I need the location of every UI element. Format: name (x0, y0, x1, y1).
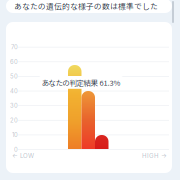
staticText: HIGH → (142, 152, 167, 159)
staticText: ← LOW (12, 152, 34, 159)
staticText: 0 (14, 146, 18, 153)
staticText: あなたの判定結果 61.3% (41, 77, 120, 88)
button[interactable]: HIGH → (142, 152, 167, 159)
staticText: 50 (10, 73, 18, 80)
staticText: 70 (11, 44, 18, 51)
staticText: 60 (10, 58, 18, 65)
staticText: 10 (12, 131, 18, 138)
staticText: 20 (10, 117, 18, 124)
staticText: 30 (10, 102, 18, 109)
button[interactable]: ← LOW (12, 152, 34, 159)
staticText: 40 (10, 87, 18, 95)
staticText: あなたの遺伝的な様子の数は標準でした (14, 0, 158, 12)
